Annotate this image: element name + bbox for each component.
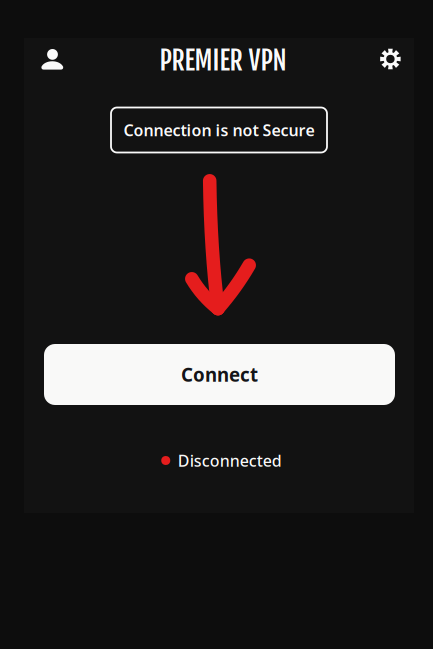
staticText: Connection is not Secure (123, 119, 314, 141)
staticText: PREMIER VPN (159, 44, 286, 77)
staticText: Disconnected (178, 450, 282, 471)
button[interactable]: Account (30, 37, 74, 81)
staticText: Connect (181, 362, 258, 387)
button[interactable]: Settings (368, 37, 412, 81)
button[interactable]: Connect (44, 344, 395, 405)
